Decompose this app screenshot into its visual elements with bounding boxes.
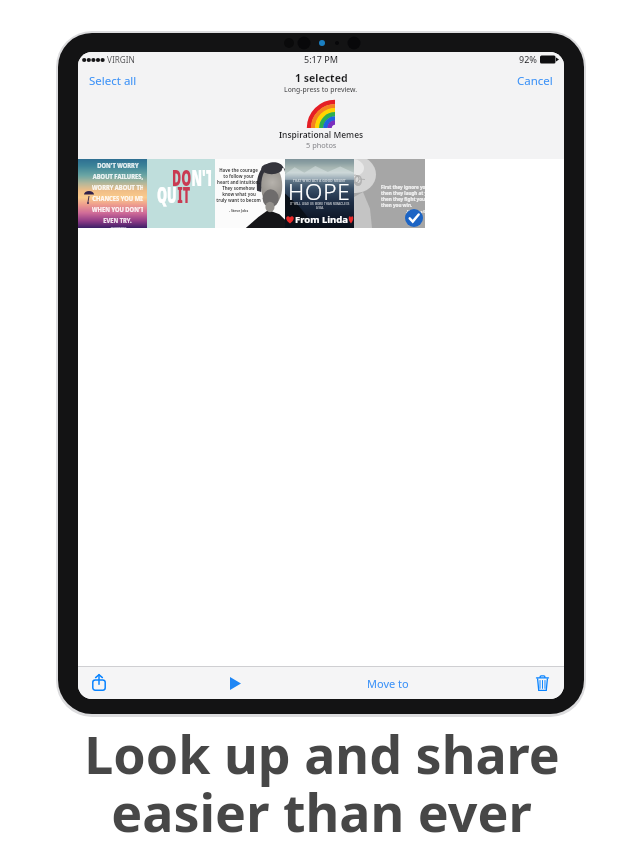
staticText: truly want to become." [216, 197, 261, 203]
staticText: know what you [222, 191, 256, 197]
staticText: ABOUT FAILURES, [93, 171, 143, 182]
staticText: WHEN YOU DON'T [92, 204, 143, 215]
staticText: Look up and share [84, 718, 560, 789]
button[interactable]: Delete [529, 670, 555, 696]
staticText: Move to [367, 676, 409, 691]
staticText: - ANONYMOUS [109, 227, 127, 228]
staticText: easier than ever [111, 776, 532, 847]
staticText: 5 photos [306, 140, 337, 150]
staticText: Cancel [517, 73, 553, 89]
staticText: then you win. [381, 202, 413, 208]
staticText: IT [177, 179, 190, 209]
staticText: A SEA [316, 206, 324, 210]
staticText: From Linda [295, 213, 348, 226]
staticText: N'T [192, 162, 211, 192]
button[interactable]: Have the courage [215, 159, 285, 228]
button[interactable]: Select all [78, 67, 148, 95]
staticText: then they laugh at you, [381, 190, 425, 196]
button[interactable]: Cancel [506, 67, 564, 95]
staticText: to follow your [223, 173, 254, 179]
staticText: QU [157, 179, 177, 209]
staticText: THAT WHO ACT A GOOD MEANT [293, 179, 346, 183]
staticText: - Steve Jobs [229, 208, 249, 213]
staticText: then they fight you, [381, 196, 425, 202]
button[interactable]: Move to [361, 671, 415, 696]
staticText: CHANCES YOU MISS [92, 193, 143, 204]
staticText: 5:17 PM [304, 53, 338, 65]
button[interactable]: DON'T WORRY [78, 159, 147, 228]
staticText: Have the courage [219, 167, 258, 173]
staticText: IT WILL LEAD US MORE THAN MIRACLE IS [290, 202, 350, 206]
staticText: DO [172, 162, 192, 192]
staticText: -Mahatma Gandhi [406, 210, 425, 214]
button[interactable]: THAT WHO ACT A GOOD MEANT [285, 159, 354, 228]
button[interactable]: DO [147, 159, 215, 228]
staticText: They somehow [222, 185, 255, 191]
staticText: EVEN TRY. [103, 215, 132, 226]
staticText: WORRY ABOUT THE [92, 182, 143, 193]
button[interactable]: Selected [405, 209, 423, 227]
staticText: heart and intuition. [217, 179, 260, 185]
staticText: Long-press to preview. [284, 85, 358, 94]
staticText: HOPE [288, 176, 351, 207]
staticText: Select all [89, 73, 137, 89]
staticText: Inspirational Memes [279, 129, 364, 140]
staticText: 92% [519, 53, 537, 65]
button[interactable]: Share [86, 669, 112, 695]
staticText: First they ignore you, [381, 184, 425, 190]
button[interactable]: First they ignore you, [354, 159, 425, 228]
staticText: DON'T WORRY [97, 160, 139, 171]
staticText: VIRGIN [107, 54, 135, 65]
staticText: 1 selected [295, 71, 348, 85]
button[interactable]: Play slideshow [222, 670, 248, 696]
